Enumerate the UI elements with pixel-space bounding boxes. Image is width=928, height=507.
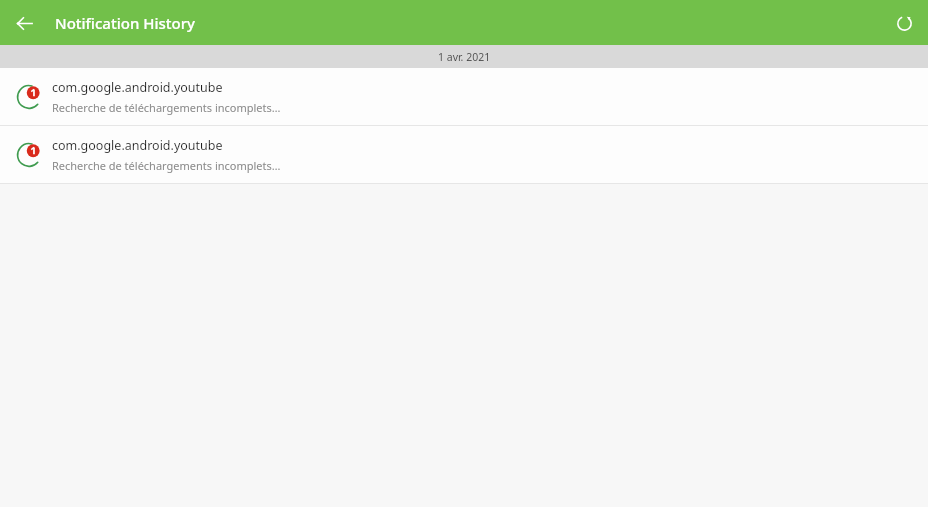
staticText: 1 avr. 2021 <box>438 50 491 64</box>
staticText: Notification History <box>55 13 195 33</box>
button[interactable]: Refresh <box>888 7 920 39</box>
button[interactable]: com.google.android.youtube <box>0 126 928 183</box>
button[interactable]: com.google.android.youtube <box>0 68 928 125</box>
button[interactable]: Back <box>8 7 40 39</box>
staticText: Recherche de téléchargements incomplets… <box>52 158 281 173</box>
staticText: com.google.android.youtube <box>52 137 223 154</box>
staticText: com.google.android.youtube <box>52 79 223 96</box>
staticText: Recherche de téléchargements incomplets… <box>52 100 281 115</box>
